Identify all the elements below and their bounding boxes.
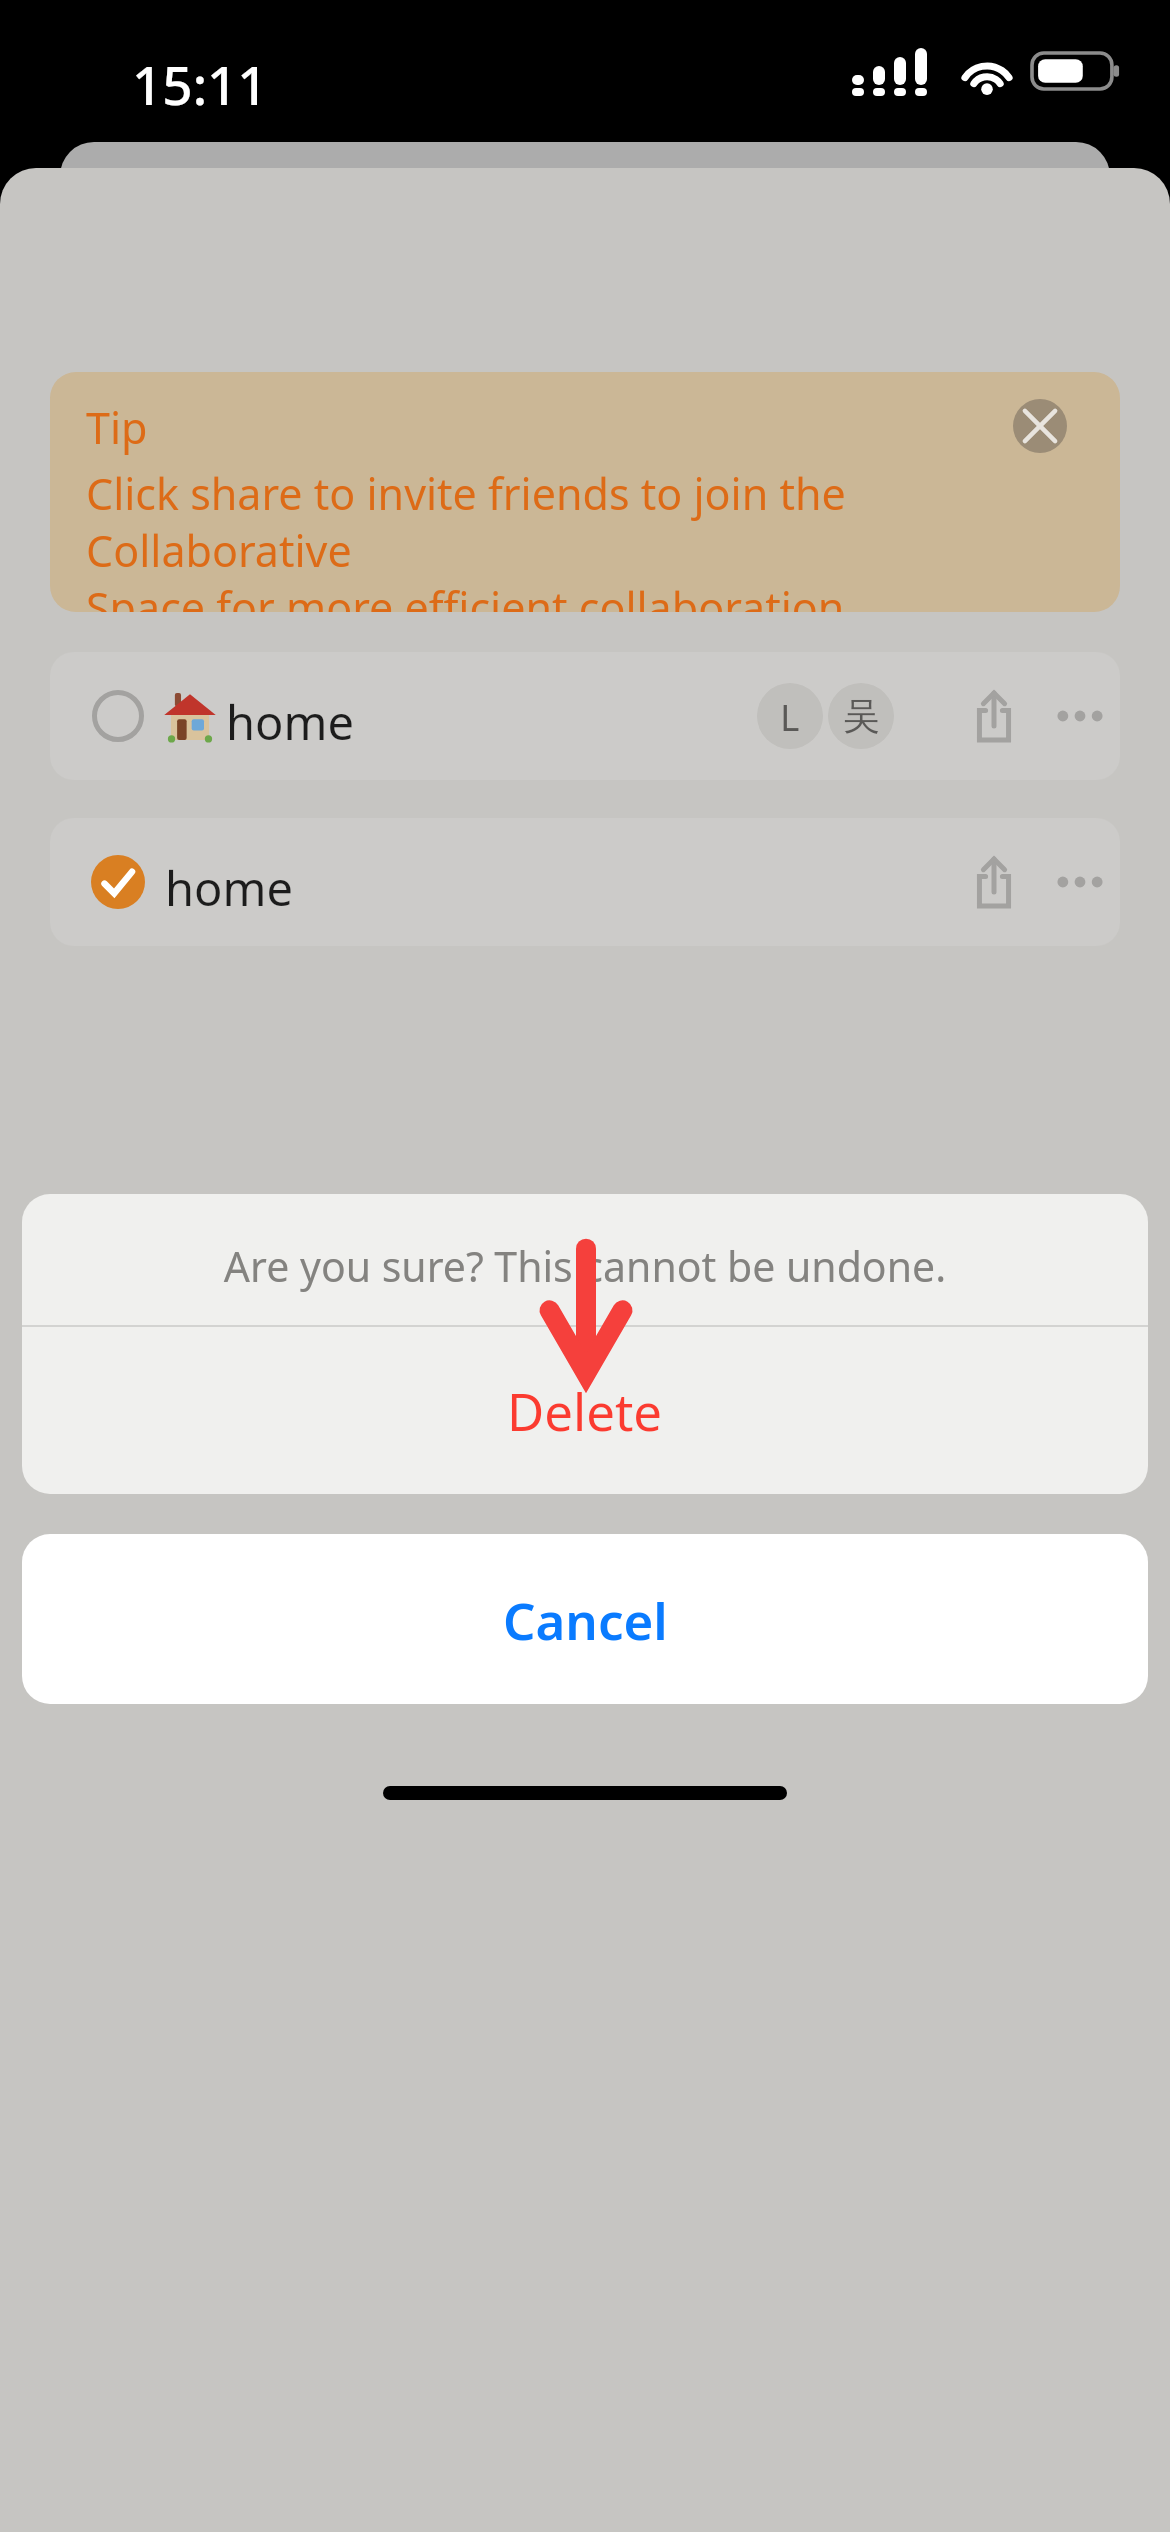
staticText: Click share to invite friends to join th…	[86, 464, 1098, 612]
staticText: 15:11	[132, 48, 268, 120]
staticText: Tip	[86, 398, 148, 457]
staticText: home	[226, 690, 354, 754]
button[interactable]: home	[50, 818, 1120, 946]
staticText: Are you sure? This cannot be undone.	[22, 1238, 1148, 1294]
staticText: Collaborative Space	[0, 395, 1170, 464]
button[interactable]: Close tip	[1010, 396, 1070, 456]
button[interactable]: More options	[1049, 685, 1111, 747]
staticText: home	[165, 856, 293, 920]
button[interactable]: Cancel	[22, 1534, 1148, 1704]
button[interactable]: Share	[963, 851, 1025, 913]
button[interactable]: Delete	[22, 1327, 1148, 1494]
button[interactable]: Add	[1036, 371, 1136, 471]
button[interactable]: Share	[963, 685, 1025, 747]
staticText: Delete	[507, 1376, 663, 1445]
button[interactable]: home	[50, 652, 1120, 780]
button[interactable]: Back	[34, 371, 134, 471]
staticText: Cancel	[503, 1585, 668, 1654]
staticText: 吴	[843, 693, 880, 740]
button[interactable]: More options	[1049, 851, 1111, 913]
staticText: L	[780, 691, 800, 741]
